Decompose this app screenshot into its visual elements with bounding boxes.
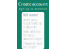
staticText: Enter your legal name as it appears xyxy=(23,18,41,29)
staticText: Email address for your account login xyxy=(23,30,42,41)
staticText: Sign up to continue xyxy=(18,7,47,11)
staticText: Password must be eight characters xyxy=(23,42,42,49)
staticText: Full name xyxy=(23,13,38,17)
staticText: Create account xyxy=(18,1,48,7)
